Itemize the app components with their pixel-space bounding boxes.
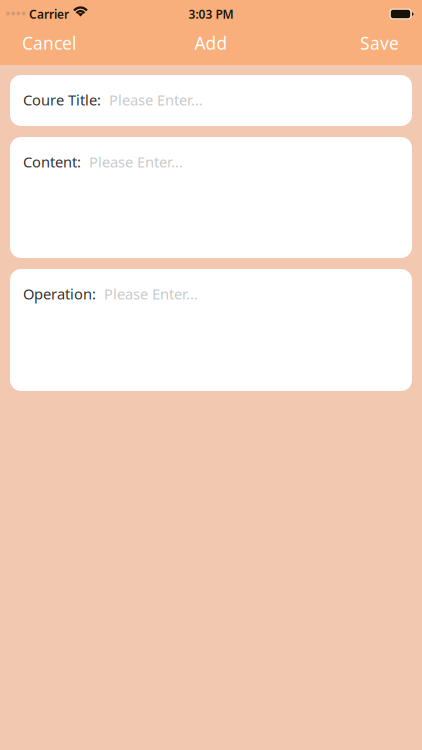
button[interactable]: Save xyxy=(348,27,422,65)
staticText: Cancel xyxy=(22,31,76,54)
staticText: Content: xyxy=(23,152,81,171)
staticText: Carrier xyxy=(29,6,69,22)
staticText: Save xyxy=(360,31,399,54)
button[interactable]: Cancel xyxy=(0,27,88,65)
staticText: Please Enter... xyxy=(81,152,183,171)
staticText: Operation: xyxy=(23,284,96,303)
staticText: Please Enter... xyxy=(101,90,203,109)
staticText: Add xyxy=(194,31,227,54)
staticText: 3:03 PM xyxy=(188,6,233,22)
staticText: Coure Title: xyxy=(23,90,101,109)
staticText: Please Enter... xyxy=(96,284,198,303)
